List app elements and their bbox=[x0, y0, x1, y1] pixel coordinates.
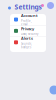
staticText: Privacy bbox=[21, 26, 34, 31]
staticText: Data, security bbox=[21, 32, 38, 36]
staticText: Sounds, badges bbox=[21, 42, 32, 49]
button[interactable]: Alerts bbox=[10, 37, 46, 48]
staticText: Alerts bbox=[21, 36, 33, 41]
staticText: Settings bbox=[14, 3, 41, 11]
staticText: Profile, email bbox=[21, 19, 32, 26]
button[interactable]: Privacy bbox=[10, 25, 46, 36]
staticText: Account bbox=[21, 13, 38, 18]
button[interactable]: Account bbox=[10, 14, 46, 25]
